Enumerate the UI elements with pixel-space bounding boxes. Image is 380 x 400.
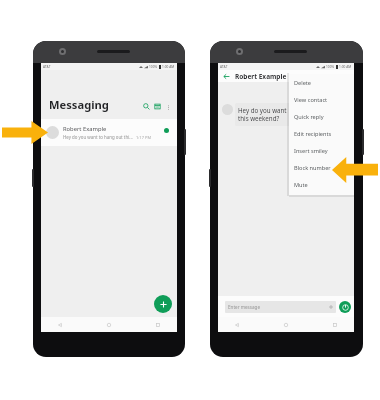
button[interactable]: Archived — [152, 101, 163, 112]
staticText: Block number — [294, 164, 331, 172]
button[interactable]: Delete — [289, 74, 354, 91]
button[interactable]: Block number — [289, 159, 354, 176]
staticText: 1:00 AM — [339, 65, 352, 69]
button[interactable]: Mute — [289, 176, 354, 193]
staticText: Insert smiley — [294, 147, 328, 155]
staticText: 1:17 PM — [136, 135, 152, 140]
button[interactable]: More options — [163, 102, 173, 112]
button[interactable]: Enter message — [225, 301, 336, 313]
staticText: Robert Example — [63, 125, 107, 133]
staticText: Messaging — [49, 97, 109, 112]
staticText: AT&T — [43, 65, 51, 69]
button[interactable]: Robert Example — [41, 119, 177, 146]
staticText: Edit recipients — [294, 130, 332, 138]
staticText: Robert Example — [235, 72, 287, 81]
button[interactable]: Back — [221, 71, 232, 82]
button[interactable]: Search — [141, 101, 152, 112]
button[interactable]: Send — [339, 301, 351, 313]
staticText: Quick reply — [294, 113, 324, 121]
staticText: View contact — [294, 96, 328, 104]
staticText: 100% — [149, 65, 158, 69]
button[interactable]: Recents — [154, 321, 162, 329]
staticText: Hey do you want this weekend? — [238, 106, 287, 123]
button[interactable]: Edit recipients — [289, 125, 354, 142]
staticText: Hey do you want to hang out thi... — [63, 134, 133, 140]
staticText: 100% — [326, 65, 335, 69]
staticText: Enter message — [228, 304, 261, 310]
button[interactable]: Home — [105, 321, 113, 329]
staticText: Delete — [294, 79, 312, 87]
button[interactable]: New conversation — [154, 295, 172, 313]
button[interactable]: Home — [282, 321, 290, 329]
button[interactable]: Back — [233, 321, 241, 329]
staticText: AT&T — [220, 65, 228, 69]
staticText: Mute — [294, 181, 308, 189]
staticText: 1:00 AM — [162, 65, 175, 69]
button[interactable]: Quick reply — [289, 108, 354, 125]
button[interactable]: Insert smiley — [289, 142, 354, 159]
button[interactable]: Back — [56, 321, 64, 329]
button[interactable]: View contact — [289, 91, 354, 108]
button[interactable]: Recents — [331, 321, 339, 329]
